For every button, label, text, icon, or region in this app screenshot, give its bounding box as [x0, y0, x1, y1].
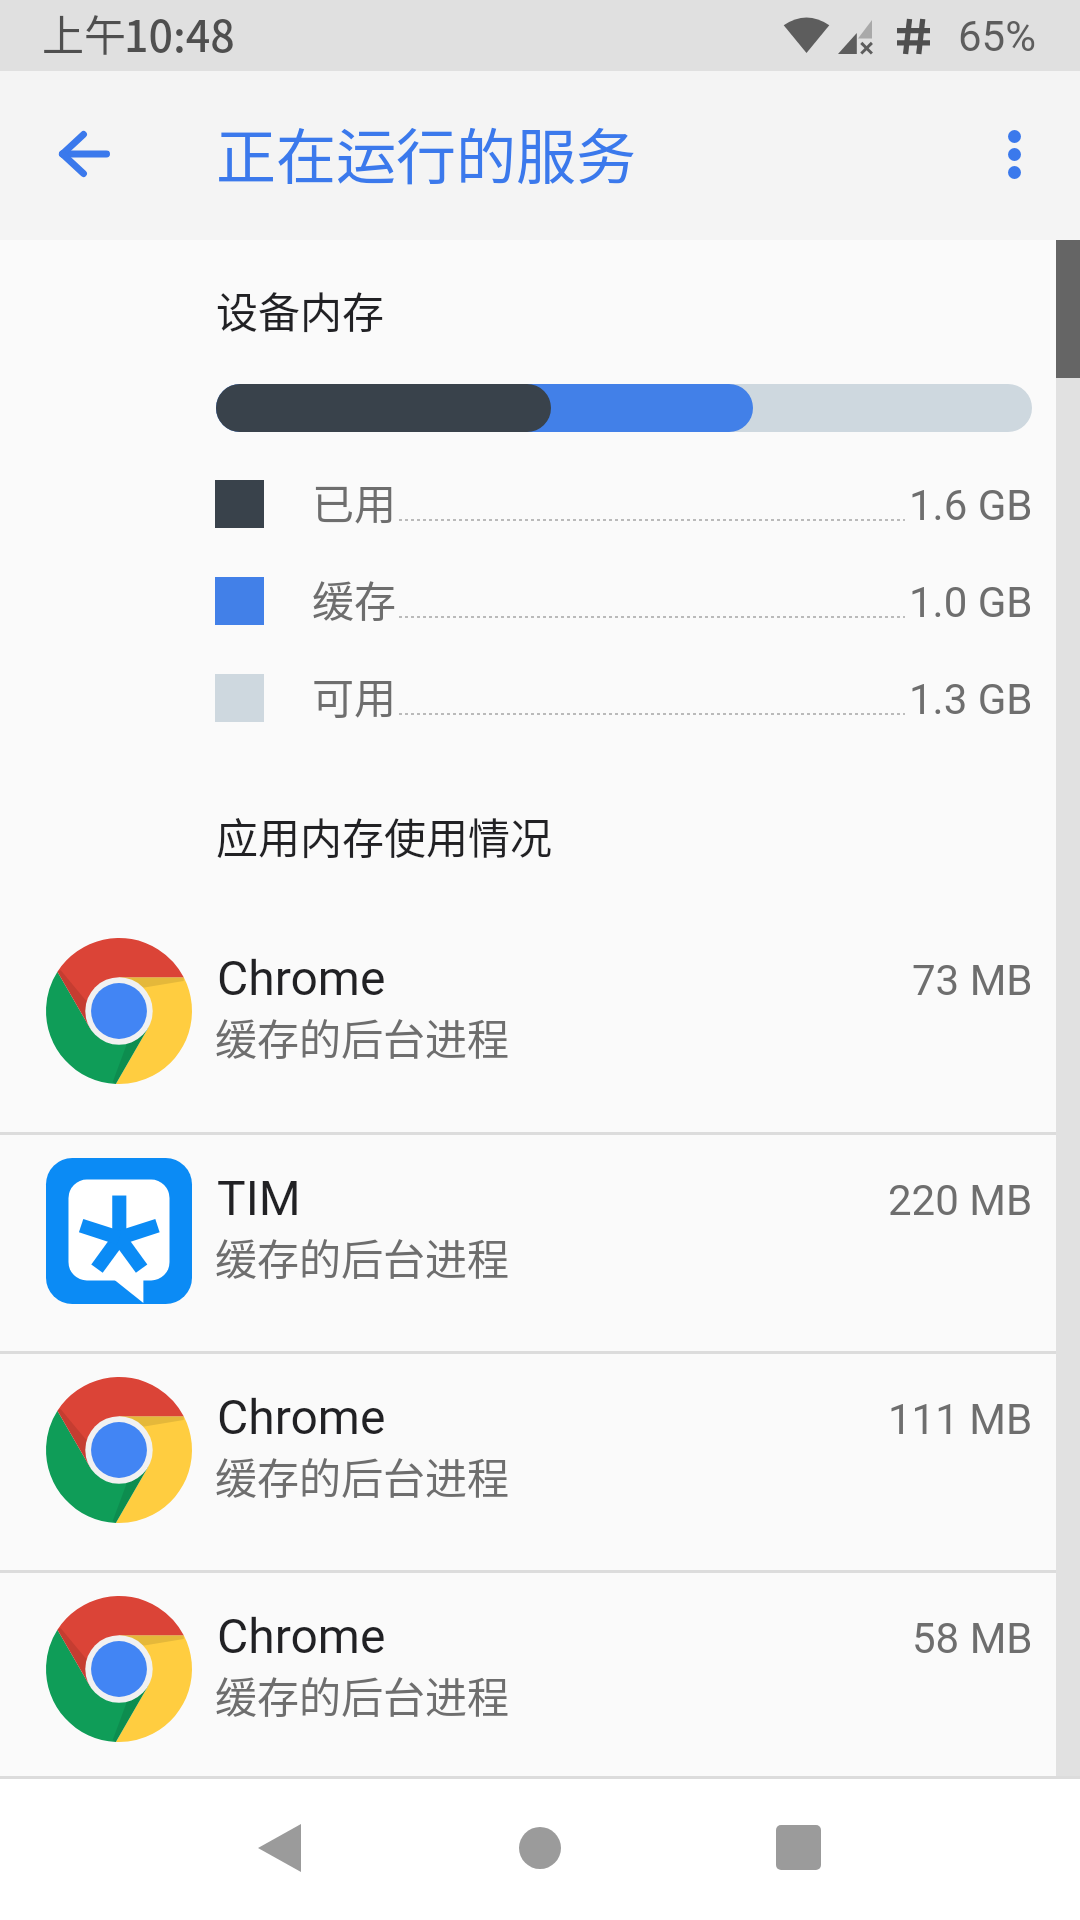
staticText: Chrome: [217, 1608, 386, 1664]
staticText: 缓存的后台进程: [215, 1226, 510, 1287]
staticText: Chrome: [217, 950, 386, 1006]
staticText: TIM: [217, 1170, 301, 1226]
button[interactable]: Chrome: [0, 1570, 1080, 1789]
button[interactable]: 返回: [189, 1779, 369, 1916]
staticText: 65%: [958, 12, 1036, 61]
staticText: 1.3 GB: [909, 675, 1033, 724]
staticText: 正在运行的服务: [216, 109, 636, 196]
button[interactable]: TIM: [0, 1132, 1080, 1351]
staticText: 缓存的后台进程: [215, 1006, 510, 1067]
button[interactable]: 返回: [28, 98, 140, 210]
staticText: 已用: [312, 471, 397, 531]
staticText: 58 MB: [912, 1614, 1033, 1663]
button[interactable]: 主屏幕: [450, 1779, 630, 1916]
staticText: 缓存: [312, 568, 397, 628]
button[interactable]: Chrome: [0, 912, 1080, 1131]
staticText: 应用内存使用情况: [216, 805, 553, 866]
staticText: 1.0 GB: [909, 578, 1033, 627]
button[interactable]: Chrome: [0, 1351, 1080, 1570]
staticText: 10:48: [124, 2, 235, 64]
staticText: 设备内存: [216, 279, 385, 340]
button[interactable]: 更多选项: [958, 98, 1070, 210]
staticText: 上午: [42, 2, 127, 63]
staticText: 73 MB: [912, 956, 1033, 1005]
staticText: 缓存的后台进程: [215, 1664, 510, 1725]
staticText: 220 MB: [888, 1176, 1033, 1225]
staticText: 缓存的后台进程: [215, 1445, 510, 1506]
staticText: 1.6 GB: [909, 481, 1033, 530]
staticText: 可用: [312, 665, 397, 725]
staticText: 111 MB: [888, 1395, 1033, 1444]
button[interactable]: 最近任务: [708, 1779, 888, 1916]
staticText: Chrome: [217, 1389, 386, 1445]
